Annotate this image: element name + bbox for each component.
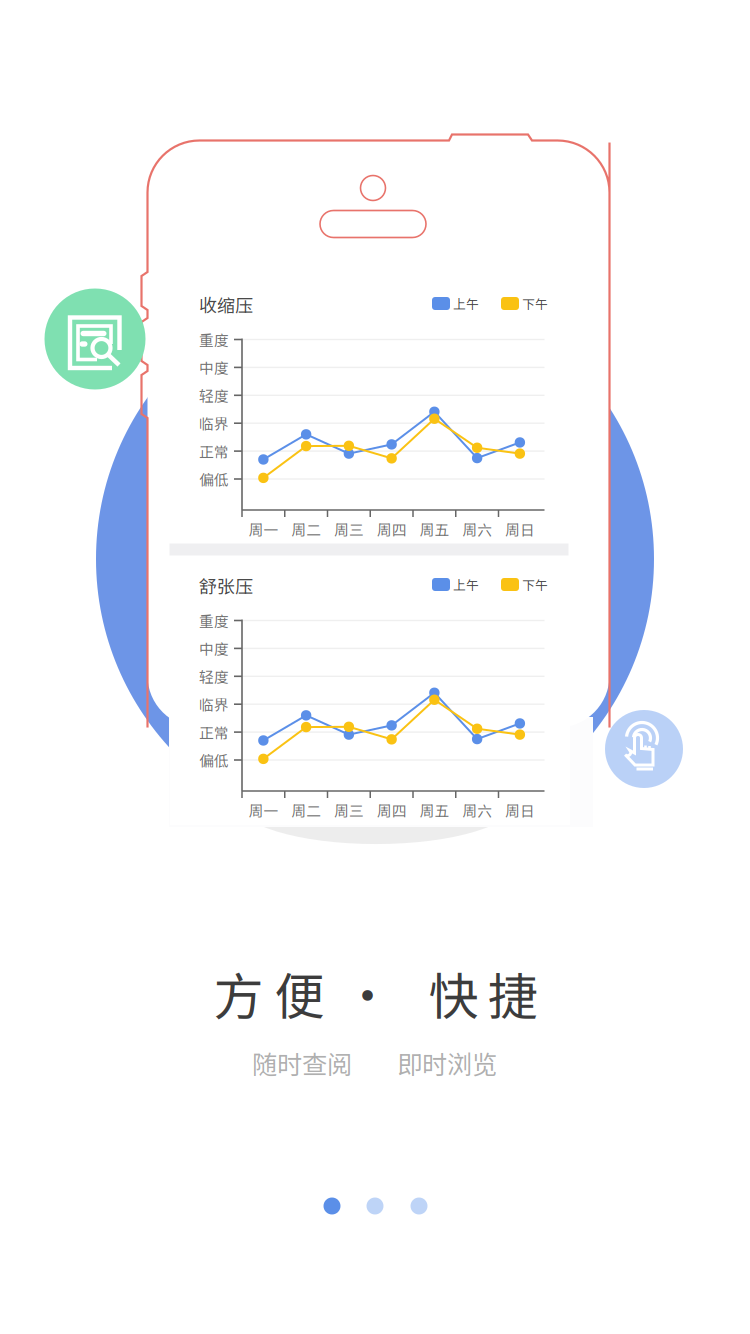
staticText: 偏低	[199, 468, 229, 490]
staticText: 正常	[199, 721, 229, 743]
staticText: 周六	[462, 799, 492, 821]
staticText: 周一	[248, 799, 278, 821]
staticText: 方	[213, 957, 263, 1029]
staticText: 周日	[505, 518, 535, 540]
staticText: 正常	[199, 440, 229, 462]
staticText: 偏低	[199, 749, 229, 771]
staticText: 轻度	[199, 385, 229, 406]
staticText: ·	[343, 957, 393, 1029]
staticText: 快	[429, 957, 479, 1029]
staticText: 周四	[377, 799, 407, 821]
staticText: 下午	[522, 575, 548, 594]
staticText: 周五	[419, 799, 449, 821]
staticText: 周一	[248, 518, 278, 540]
staticText: 周四	[377, 518, 407, 540]
staticText: 周二	[291, 518, 321, 540]
staticText: 便	[275, 957, 325, 1029]
staticText: 随时查阅	[252, 1045, 352, 1081]
staticText: 中度	[199, 638, 229, 659]
staticText: 下午	[522, 294, 548, 313]
staticText: 重度	[199, 329, 229, 350]
staticText: 中度	[199, 357, 229, 378]
staticText: 轻度	[199, 666, 229, 687]
staticText: 周三	[334, 799, 364, 821]
staticText: 临界	[199, 694, 229, 715]
staticText: 周六	[462, 518, 492, 540]
staticText: 捷	[488, 957, 538, 1029]
staticText: 舒张压	[199, 572, 253, 599]
staticText: 即时浏览	[397, 1045, 497, 1081]
staticText: 临界	[199, 413, 229, 434]
staticText: 周三	[334, 518, 364, 540]
staticText: 上午	[453, 294, 479, 313]
staticText: 周五	[419, 518, 449, 540]
staticText: 收缩压	[199, 291, 253, 318]
staticText: 上午	[453, 575, 479, 594]
staticText: 重度	[199, 610, 229, 631]
staticText: 周日	[505, 799, 535, 821]
staticText: 周二	[291, 799, 321, 821]
